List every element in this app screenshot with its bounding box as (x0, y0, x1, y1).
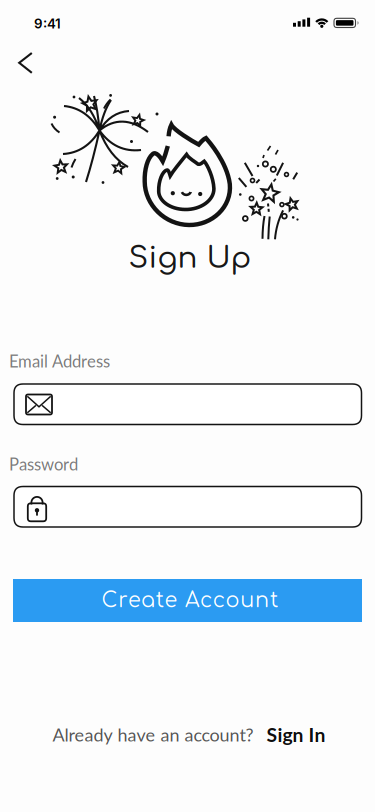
button[interactable]: Create Account (13, 579, 362, 622)
button[interactable]: Email Address (14, 384, 361, 424)
staticText: Create Account (101, 589, 278, 612)
button[interactable]: Back (6, 41, 50, 85)
staticText: Email Address (9, 351, 110, 371)
button[interactable]: Sign In (266, 723, 325, 746)
staticText: Sign Up (128, 242, 251, 275)
button[interactable]: Password (14, 486, 361, 527)
staticText: Password (9, 454, 78, 474)
staticText: Sign In (266, 723, 325, 746)
staticText: Already have an account? (52, 724, 253, 745)
staticText: 9:41 (34, 15, 61, 32)
